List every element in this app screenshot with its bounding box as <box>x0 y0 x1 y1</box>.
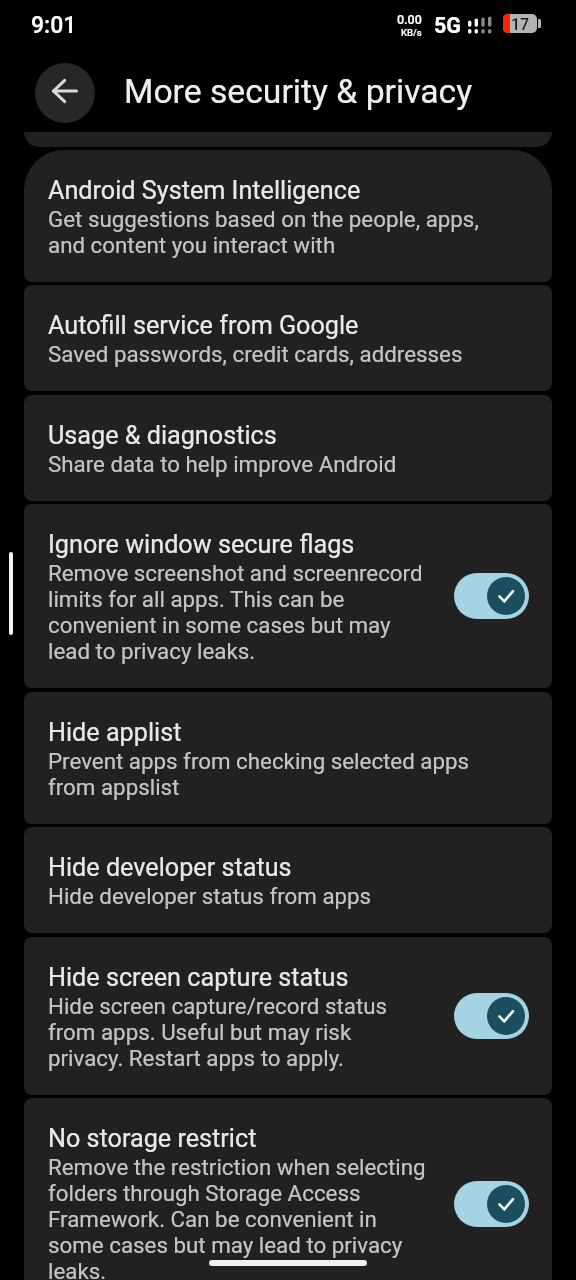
button[interactable]: Hide developer status <box>24 827 552 933</box>
staticText: Hide developer status <box>48 853 292 883</box>
button[interactable]: Toggle setting <box>454 993 529 1039</box>
button[interactable]: Toggle setting <box>454 573 529 619</box>
button[interactable]: Usage & diagnostics <box>24 395 552 501</box>
staticText: Hide applist <box>48 718 182 748</box>
staticText: Hide screen capture status <box>48 963 349 993</box>
button[interactable]: No storage restrict <box>24 1098 552 1280</box>
staticText: 17 <box>503 15 537 33</box>
staticText: 9:01 <box>31 12 77 39</box>
staticText: Ignore window secure flags <box>48 530 355 560</box>
button[interactable]: Ignore window secure flags <box>24 504 552 688</box>
button[interactable]: Hide applist <box>24 692 552 824</box>
staticText: Remove the restriction when selecting fo… <box>48 1154 430 1280</box>
staticText: KB/s <box>401 27 422 38</box>
button[interactable]: Autofill service from Google <box>24 285 552 391</box>
staticText: Android System Intelligence <box>48 176 361 206</box>
staticText: Usage & diagnostics <box>48 421 277 451</box>
staticText: 0.00 <box>397 12 422 27</box>
staticText: Autofill service from Google <box>48 311 359 341</box>
staticText: Prevent apps from checking selected apps… <box>48 748 500 800</box>
staticText: Share data to help improve Android <box>48 451 397 477</box>
staticText: Saved passwords, credit cards, addresses <box>48 341 463 367</box>
button[interactable]: Android System Intelligence <box>24 150 552 282</box>
staticText: Hide screen capture/record status from a… <box>48 993 430 1071</box>
staticText: No storage restrict <box>48 1124 257 1154</box>
staticText: Hide developer status from apps <box>48 883 372 909</box>
button[interactable]: Toggle setting <box>454 1181 529 1227</box>
staticText: 5G <box>434 13 461 38</box>
button[interactable]: Hide screen capture status <box>24 937 552 1095</box>
staticText: Get suggestions based on the people, app… <box>48 206 500 258</box>
staticText: Remove screenshot and screenrecord limit… <box>48 560 430 664</box>
staticText: More security & privacy <box>124 72 473 111</box>
button[interactable]: Navigate up <box>35 63 95 123</box>
